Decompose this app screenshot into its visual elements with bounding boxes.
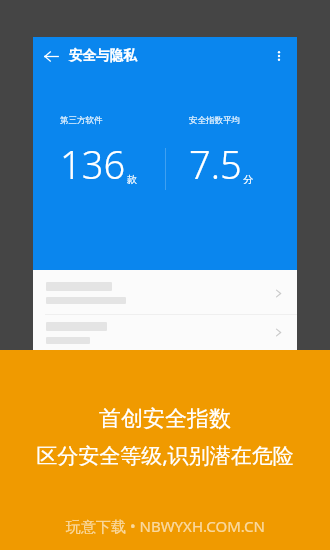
staticText: 首创安全指数 xyxy=(99,405,231,433)
staticText: 安全与隐私 xyxy=(69,47,137,64)
button[interactable]: 更多选项 xyxy=(261,38,297,74)
staticText: 分 xyxy=(243,173,253,186)
button[interactable] xyxy=(33,315,297,350)
staticText: 136 xyxy=(60,138,126,190)
staticText: 安全指数平均 xyxy=(189,115,240,126)
staticText: 第三方软件 xyxy=(60,115,103,126)
staticText: 玩意下载 • NBWYXH.COM.CN xyxy=(66,516,265,536)
button[interactable] xyxy=(33,272,297,314)
staticText: 区分安全等级,识别潜在危险 xyxy=(36,441,294,470)
staticText: 7.5 xyxy=(189,138,242,190)
staticText: 款 xyxy=(127,173,137,186)
button[interactable]: 返回 xyxy=(33,38,69,74)
